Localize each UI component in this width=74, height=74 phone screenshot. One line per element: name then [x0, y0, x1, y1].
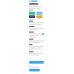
button[interactable]: Second option	[36, 12, 42, 19]
button[interactable]: First option	[29, 12, 35, 19]
button[interactable]: Secondary action	[29, 69, 40, 71]
button[interactable]: Primary action	[29, 61, 44, 64]
button[interactable]: Back	[29, 0, 45, 2]
